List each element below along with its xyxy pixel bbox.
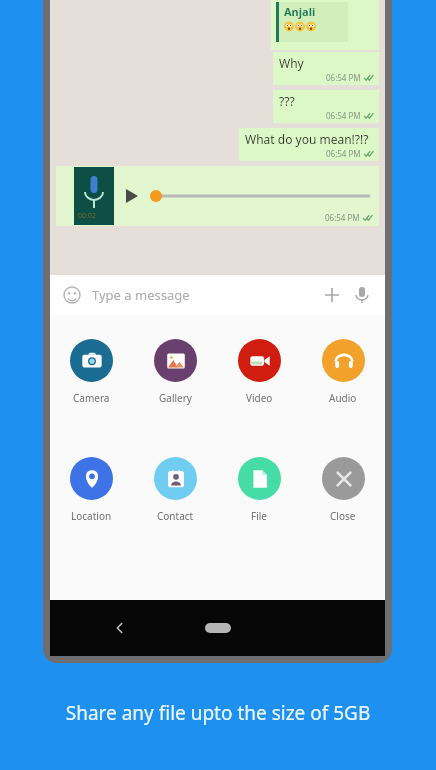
button[interactable]: Back (106, 614, 134, 642)
button[interactable]: Gallery (133, 337, 217, 407)
staticText: What do you mean!?!? (245, 131, 369, 147)
staticText: Gallery (159, 391, 192, 405)
staticText: Camera (73, 391, 110, 405)
staticText: Location (71, 509, 112, 523)
button[interactable]: Attach (319, 282, 345, 308)
staticText: Audio (329, 391, 357, 405)
staticText: File (251, 509, 267, 523)
button[interactable]: Video (217, 337, 301, 407)
staticText: Close (330, 509, 356, 523)
button[interactable]: Emoji (60, 283, 84, 307)
button[interactable]: File (217, 455, 301, 525)
staticText: ??? (279, 93, 295, 109)
staticText: Why (279, 55, 304, 71)
button[interactable]: Camera (50, 337, 133, 407)
button[interactable]: Voice message (349, 282, 375, 308)
staticText: 06:54 PM (326, 148, 361, 159)
staticText: Contact (157, 509, 194, 523)
staticText: Type a message (92, 286, 190, 304)
button[interactable]: Close (301, 455, 385, 525)
staticText: 06:54 PM (326, 72, 361, 83)
button[interactable]: Contact (133, 455, 217, 525)
staticText: 00:02 (78, 211, 96, 221)
button[interactable]: Home (205, 623, 231, 633)
staticText: Video (246, 391, 273, 405)
staticText: 06:54 PM (326, 110, 361, 121)
button[interactable]: Audio (301, 337, 385, 407)
staticText: Anjali (284, 4, 316, 19)
staticText: Share any file upto the size of 5GB (0, 700, 436, 726)
button[interactable]: Type a message (92, 286, 319, 304)
button[interactable]: Location (50, 455, 133, 525)
staticText: 06:54 PM (325, 212, 360, 223)
